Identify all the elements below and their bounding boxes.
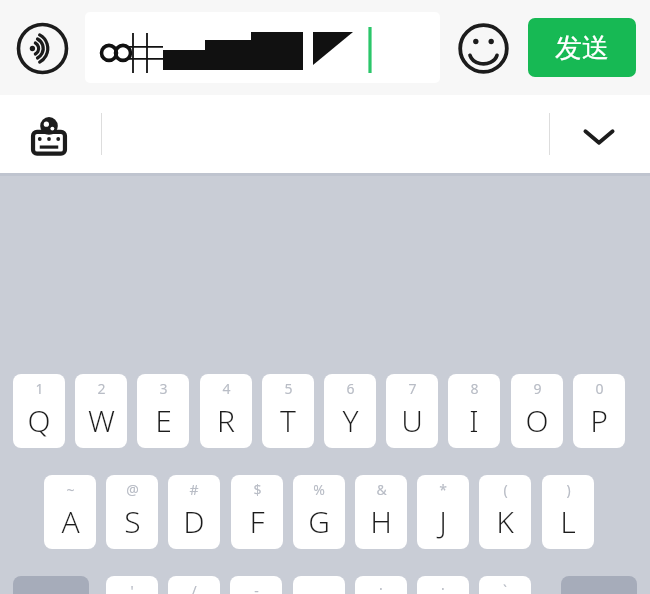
staticText: K xyxy=(496,501,514,542)
staticText: ' xyxy=(130,581,134,594)
button[interactable]: Hide keyboard xyxy=(572,109,626,163)
staticText: * xyxy=(439,480,447,499)
button[interactable]: - xyxy=(230,576,282,594)
staticText: : xyxy=(379,581,383,594)
button[interactable]: Emoji xyxy=(455,20,512,77)
button[interactable]: Backspace xyxy=(561,576,637,594)
button[interactable]: # xyxy=(168,475,220,549)
staticText: E xyxy=(155,400,172,441)
button[interactable]: 3 xyxy=(137,374,189,448)
staticText: T xyxy=(280,400,296,441)
button[interactable]: ( xyxy=(479,475,531,549)
staticText: P xyxy=(590,400,608,441)
button[interactable]: 6 xyxy=(324,374,376,448)
button[interactable] xyxy=(85,12,440,83)
button[interactable]: ; xyxy=(417,576,469,594)
staticText: 1 xyxy=(35,379,44,398)
staticText: 9 xyxy=(533,379,542,398)
button[interactable]: 9 xyxy=(511,374,563,448)
staticText: / xyxy=(191,581,197,594)
staticText: S xyxy=(124,501,141,542)
staticText: 0 xyxy=(595,379,604,398)
button[interactable]: 发送 xyxy=(528,18,636,77)
staticText: 3 xyxy=(159,379,168,398)
staticText: ` xyxy=(503,581,507,594)
staticText: Y xyxy=(342,400,359,441)
staticText: ) xyxy=(566,480,571,499)
staticText: G xyxy=(308,501,330,542)
staticText: D xyxy=(183,501,205,542)
staticText: U xyxy=(401,400,423,441)
button[interactable]: Change keyboard language xyxy=(20,107,78,165)
button[interactable]: 1 xyxy=(13,374,65,448)
button[interactable]: * xyxy=(417,475,469,549)
staticText: 5 xyxy=(284,379,293,398)
button[interactable]: % xyxy=(293,475,345,549)
staticText: Q xyxy=(27,400,51,441)
staticText: ; xyxy=(441,581,445,594)
button[interactable]: ) xyxy=(542,475,594,549)
button[interactable]: 2 xyxy=(75,374,127,448)
staticText: W xyxy=(88,400,115,441)
staticText: F xyxy=(249,501,265,542)
staticText: - xyxy=(254,581,259,594)
staticText: 8 xyxy=(470,379,479,398)
button[interactable]: ` xyxy=(479,576,531,594)
button[interactable]: 4 xyxy=(200,374,252,448)
button[interactable]: Shift xyxy=(13,576,89,594)
staticText: # xyxy=(189,480,199,499)
staticText: H xyxy=(370,501,392,542)
staticText: J xyxy=(439,501,447,542)
button[interactable]: & xyxy=(355,475,407,549)
staticText: % xyxy=(313,480,325,499)
staticText: & xyxy=(376,480,387,499)
staticText: ( xyxy=(503,480,508,499)
staticText: 2 xyxy=(97,379,106,398)
button[interactable]: ' xyxy=(106,576,158,594)
button[interactable]: 7 xyxy=(386,374,438,448)
staticText: A xyxy=(61,501,80,542)
staticText: $ xyxy=(253,480,262,499)
button[interactable]: ~ xyxy=(44,475,96,549)
staticText: @ xyxy=(126,480,139,499)
staticText: L xyxy=(560,501,576,542)
button[interactable]: @ xyxy=(106,475,158,549)
staticText: O xyxy=(525,400,549,441)
button[interactable]: 0 xyxy=(573,374,625,448)
staticText: ~ xyxy=(66,480,75,499)
button[interactable]: 5 xyxy=(262,374,314,448)
staticText: 发送 xyxy=(555,31,609,65)
button[interactable]: $ xyxy=(231,475,283,549)
button[interactable]: 8 xyxy=(448,374,500,448)
staticText: 4 xyxy=(222,379,231,398)
staticText: 6 xyxy=(346,379,355,398)
staticText: R xyxy=(217,400,235,441)
staticText: I xyxy=(469,400,479,441)
button[interactable]: / xyxy=(168,576,220,594)
button[interactable]: _ xyxy=(293,576,345,594)
staticText: 7 xyxy=(408,379,417,398)
button[interactable]: Voice input xyxy=(14,20,71,77)
button[interactable]: : xyxy=(355,576,407,594)
